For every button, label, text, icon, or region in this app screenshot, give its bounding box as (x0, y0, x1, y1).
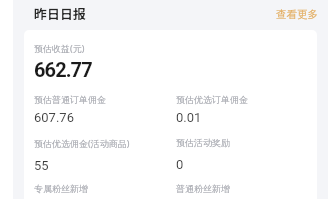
button[interactable]: 预估活动奖励 (176, 137, 307, 172)
staticText: 55 (34, 158, 49, 173)
staticText: 预估活动奖励 (176, 137, 230, 148)
staticText: 607.76 (34, 110, 74, 125)
staticText: 662.77 (34, 58, 92, 81)
staticText: 0 (176, 157, 184, 172)
button[interactable]: 预估优选订单佣金 (176, 94, 307, 125)
staticText: 昨日日报 (34, 4, 87, 23)
staticText: 普通粉丝新增 (176, 183, 230, 194)
button[interactable]: 预估收益(元) (34, 42, 307, 81)
staticText: 查看更多 (276, 8, 318, 21)
staticText: 预估优选佣金(活动商品) (34, 137, 130, 149)
staticText: 专属粉丝新增 (34, 183, 88, 194)
staticText: 预估普通订单佣金 (34, 94, 106, 105)
button[interactable]: 预估普通订单佣金 (34, 94, 176, 125)
staticText: 预估收益(元) (34, 42, 85, 54)
button[interactable]: 普通粉丝新增 (176, 183, 307, 199)
button[interactable]: 预估优选佣金(活动商品) (34, 137, 176, 173)
staticText: 0.01 (176, 110, 202, 125)
button[interactable]: 专属粉丝新增 (34, 183, 176, 199)
button[interactable]: 查看更多 (270, 3, 324, 26)
button[interactable]: 预估收益(元) (24, 30, 317, 199)
staticText: 预估优选订单佣金 (176, 94, 248, 105)
button[interactable]: 昨日日报 (28, 0, 93, 28)
